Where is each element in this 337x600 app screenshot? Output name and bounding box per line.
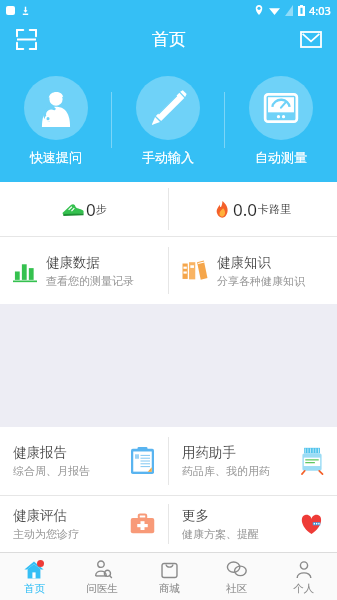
staticText: 商城 [159, 582, 180, 595]
button[interactable]: 自动测量 [225, 58, 337, 182]
button[interactable]: 健康知识 [169, 237, 337, 304]
staticText: 0.0 [233, 198, 258, 221]
staticText: 步 [96, 202, 107, 216]
button[interactable]: 社区 [203, 553, 270, 600]
staticText: 自动测量 [255, 149, 307, 165]
staticText: 综合周、月报告 [13, 464, 90, 478]
staticText: 首页 [24, 582, 45, 595]
button[interactable]: 个人 [270, 553, 337, 600]
staticText: 4:03 [309, 3, 331, 18]
staticText: 查看您的测量记录 [46, 274, 134, 288]
staticText: 健康方案、提醒 [182, 527, 259, 541]
staticText: 快速提问 [30, 149, 82, 165]
button[interactable]: 商城 [136, 553, 203, 600]
button[interactable]: 用药助手 [169, 427, 337, 495]
button[interactable]: 手动输入 [112, 58, 224, 182]
staticText: 健康评估 [13, 507, 67, 524]
staticText: 首页 [152, 29, 186, 50]
staticText: 分享各种健康知识 [217, 274, 305, 288]
staticText: 健康知识 [217, 254, 271, 271]
staticText: 个人 [293, 582, 314, 595]
staticText: 0 [86, 198, 96, 221]
staticText: 药品库、我的用药 [182, 464, 270, 478]
button[interactable]: Scan QR code [10, 23, 42, 55]
staticText: 社区 [226, 582, 247, 595]
button[interactable]: 问医生 [68, 553, 136, 600]
button[interactable]: 快速提问 [0, 58, 111, 182]
button[interactable]: 健康数据 [0, 237, 168, 304]
staticText: 手动输入 [142, 149, 194, 165]
button[interactable]: 更多 [169, 496, 337, 552]
staticText: 用药助手 [182, 444, 236, 461]
staticText: 问医生 [86, 582, 118, 595]
button[interactable]: 健康评估 [0, 496, 168, 552]
button[interactable]: 0.0 [169, 182, 337, 236]
staticText: 主动为您诊疗 [13, 527, 79, 541]
button[interactable]: Messages [295, 23, 327, 55]
staticText: 卡路里 [258, 202, 291, 216]
staticText: 健康报告 [13, 444, 67, 461]
button[interactable]: 首页 [0, 553, 68, 600]
staticText: 更多 [182, 507, 209, 524]
button[interactable]: 0 [0, 182, 168, 236]
staticText: 健康数据 [46, 254, 100, 271]
button[interactable]: 健康报告 [0, 427, 168, 495]
